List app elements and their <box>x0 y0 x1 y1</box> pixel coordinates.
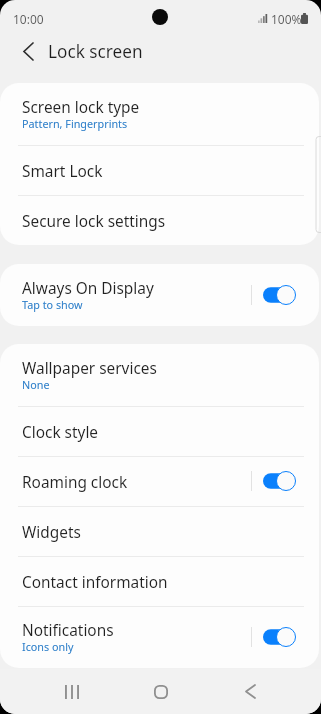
staticText: Always On Display <box>22 278 154 299</box>
staticText: Secure lock settings <box>22 211 166 232</box>
staticText: Notifications <box>22 620 114 641</box>
staticText: Clock style <box>22 422 99 443</box>
staticText: Screen lock type <box>22 97 140 118</box>
button[interactable]: Notifications <box>0 606 319 668</box>
button[interactable]: Recent apps <box>49 669 94 714</box>
staticText: Wallpaper services <box>22 358 157 379</box>
button[interactable]: Navigate up <box>8 35 48 68</box>
staticText: Smart Lock <box>22 161 103 182</box>
button[interactable]: Wallpaper services <box>0 344 319 406</box>
button[interactable]: Home <box>138 669 183 714</box>
button[interactable]: Screen lock type <box>0 83 319 145</box>
staticText: 100% <box>271 11 302 27</box>
button[interactable]: Clock style <box>0 406 319 456</box>
button[interactable]: Roaming clock <box>0 456 319 506</box>
button[interactable]: Secure lock settings <box>0 195 319 245</box>
staticText: 10:00 <box>13 11 44 27</box>
button[interactable]: Back <box>228 669 273 714</box>
button[interactable]: Widgets <box>0 506 319 556</box>
staticText: Tap to show <box>22 297 83 312</box>
staticText: Widgets <box>22 522 81 543</box>
staticText: Contact information <box>22 572 168 593</box>
button[interactable]: Toggle switch <box>263 471 296 491</box>
button[interactable]: Always On Display <box>0 264 319 326</box>
button[interactable]: Toggle switch <box>263 285 296 305</box>
staticText: Lock screen <box>48 40 143 63</box>
staticText: Roaming clock <box>22 472 128 493</box>
staticText: Pattern, Fingerprints <box>22 116 128 131</box>
staticText: None <box>22 377 50 392</box>
button[interactable]: Toggle switch <box>263 627 296 647</box>
button[interactable]: Smart Lock <box>0 145 319 195</box>
button[interactable]: Contact information <box>0 556 319 606</box>
staticText: Icons only <box>22 639 74 654</box>
